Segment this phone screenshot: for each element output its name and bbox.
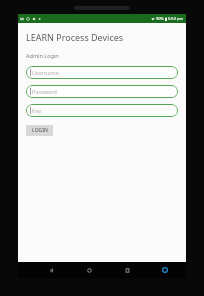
staticText: Admin Login (26, 52, 59, 59)
staticText: 90% (156, 16, 164, 21)
staticText: Username (32, 69, 59, 76)
button[interactable]: Password (26, 85, 178, 98)
staticText: Password (32, 88, 57, 95)
staticText: LOGIN (32, 127, 48, 134)
staticText: LEARN Process Devices (26, 31, 124, 43)
button[interactable]: Home (82, 263, 96, 277)
button[interactable]: Key (26, 104, 178, 117)
button[interactable]: Back (44, 263, 58, 277)
button[interactable]: Recent apps (120, 263, 134, 277)
button[interactable]: Username (26, 66, 178, 79)
button[interactable]: Assistant (158, 263, 172, 277)
staticText: 5:53 pm (168, 16, 184, 21)
button[interactable]: LOGIN (26, 125, 53, 136)
staticText: Key (32, 107, 42, 114)
